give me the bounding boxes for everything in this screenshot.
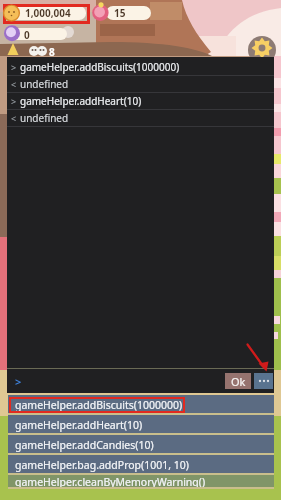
staticText: undefined bbox=[20, 77, 69, 91]
staticText: Ok bbox=[231, 374, 246, 389]
staticText: gameHelper.addHeart(10) bbox=[15, 418, 143, 432]
button[interactable]: gameHelper.addBiscuits(1000000) bbox=[8, 395, 274, 415]
staticText: gameHelper.addBiscuits(1000000) bbox=[20, 60, 180, 74]
button[interactable]: More options bbox=[254, 373, 273, 389]
button[interactable]: gameHelper.addCandies(10) bbox=[8, 435, 274, 455]
staticText: > bbox=[15, 374, 22, 389]
staticText: 1,000,004 bbox=[25, 6, 71, 20]
staticText: 0 bbox=[24, 28, 30, 40]
button[interactable]: gameHelper.cleanByMemoryWarning() bbox=[8, 475, 274, 489]
staticText: gameHelper.bag.addProp(1001, 10) bbox=[15, 458, 189, 472]
staticText: gameHelper.addCandies(10) bbox=[15, 438, 154, 452]
staticText: 15 bbox=[114, 6, 126, 20]
staticText: > bbox=[11, 95, 17, 107]
staticText: < bbox=[11, 112, 17, 124]
button[interactable]: gameHelper.addHeart(10) bbox=[8, 415, 274, 435]
staticText: gameHelper.cleanByMemoryWarning() bbox=[15, 475, 206, 489]
staticText: gameHelper.addBiscuits(1000000) bbox=[15, 398, 183, 412]
staticText: < bbox=[11, 78, 17, 90]
button[interactable]: gameHelper.bag.addProp(1001, 10) bbox=[8, 455, 274, 475]
staticText: gameHelper.addHeart(10) bbox=[20, 94, 142, 108]
staticText: undefined bbox=[20, 111, 69, 125]
staticText: 8 bbox=[49, 45, 55, 59]
staticText: > bbox=[11, 61, 17, 73]
button[interactable]: Ok bbox=[225, 373, 251, 389]
